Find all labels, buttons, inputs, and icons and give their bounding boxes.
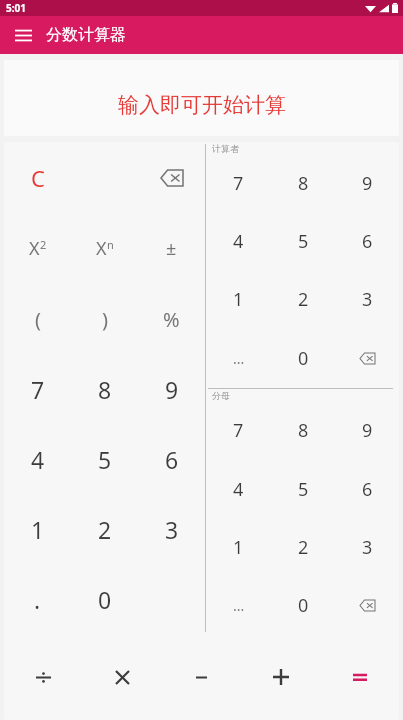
button[interactable]: 8 [271, 154, 335, 212]
button[interactable]: Equals [320, 634, 399, 720]
button[interactable]: 7 [206, 401, 271, 460]
staticText: 3 [362, 535, 373, 560]
staticText: 3 [362, 287, 373, 312]
staticText: ) [102, 306, 108, 333]
button[interactable]: 7 [4, 354, 71, 424]
staticText: 7 [233, 171, 244, 196]
button[interactable]: 2 [71, 494, 138, 564]
button[interactable]: Divide [4, 634, 83, 720]
button[interactable]: 5 [271, 460, 335, 518]
staticText: 1 [31, 514, 45, 545]
staticText: X [96, 236, 107, 261]
staticText: 9 [362, 171, 373, 196]
button[interactable]: 2 [271, 270, 335, 329]
button[interactable]: 6 [335, 460, 399, 518]
staticText: 6 [362, 477, 373, 502]
button[interactable]: 9 [138, 354, 205, 424]
button[interactable]: Backspace [138, 142, 205, 213]
button[interactable]: 9 [335, 401, 399, 460]
staticText: 8 [98, 374, 112, 405]
button[interactable]: 1 [206, 518, 271, 576]
button[interactable]: 0 [71, 564, 138, 634]
staticText: 2 [40, 237, 47, 252]
staticText: n [107, 237, 114, 252]
staticText: 5 [298, 229, 309, 254]
button[interactable]: 1 [206, 270, 271, 329]
button[interactable]: 3 [335, 518, 399, 576]
staticText: 9 [362, 418, 373, 443]
staticText: . [34, 584, 41, 615]
staticText: 2 [298, 535, 309, 560]
staticText: 7 [31, 374, 45, 405]
staticText: % [163, 306, 180, 333]
button[interactable]: 5 [71, 424, 138, 494]
button[interactable]: 3 [335, 270, 399, 329]
staticText: X [29, 236, 40, 261]
staticText: 1 [233, 287, 244, 312]
staticText: 3 [165, 514, 179, 545]
button[interactable]: 9 [335, 154, 399, 212]
button[interactable]: ± [138, 213, 205, 284]
button[interactable]: 6 [335, 212, 399, 270]
staticText: C [31, 163, 45, 193]
button[interactable]: ... [206, 329, 271, 388]
button[interactable]: 0 [271, 329, 335, 388]
button[interactable]: Menu [0, 16, 46, 54]
button[interactable]: 0 [271, 576, 335, 634]
staticText: 2 [298, 287, 309, 312]
staticText: 2 [98, 514, 112, 545]
button[interactable]: Backspace [335, 576, 399, 634]
staticText: 6 [165, 444, 179, 475]
staticText: 计算者 [212, 143, 239, 154]
button[interactable]: X [71, 213, 138, 284]
button[interactable]: Backspace [335, 329, 399, 388]
staticText: 0 [298, 593, 309, 618]
button[interactable]: 8 [271, 401, 335, 460]
button[interactable]: ( [4, 284, 71, 354]
button[interactable]: C [4, 142, 71, 213]
button[interactable]: % [138, 284, 205, 354]
staticText: ... [233, 596, 245, 615]
staticText: ( [35, 306, 41, 333]
button[interactable]: ) [71, 284, 138, 354]
staticText: 4 [31, 444, 45, 475]
button[interactable]: 6 [138, 424, 205, 494]
staticText: 7 [233, 418, 244, 443]
button[interactable]: Minus [162, 634, 241, 720]
staticText: 8 [298, 418, 309, 443]
staticText: 8 [298, 171, 309, 196]
button[interactable]: . [4, 564, 71, 634]
staticText: 6 [362, 229, 373, 254]
staticText: 输入即可开始计算 [118, 92, 286, 118]
button[interactable]: Multiply [83, 634, 162, 720]
button[interactable]: 8 [71, 354, 138, 424]
button[interactable]: 4 [206, 212, 271, 270]
button[interactable]: X [4, 213, 71, 284]
staticText: 0 [298, 346, 309, 371]
button[interactable]: 4 [4, 424, 71, 494]
staticText: ± [166, 236, 177, 261]
staticText: 分母 [212, 390, 230, 401]
staticText: 5:01 [6, 1, 26, 15]
button[interactable]: 3 [138, 494, 205, 564]
staticText: 0 [98, 584, 112, 615]
button[interactable]: 5 [271, 212, 335, 270]
staticText: 分数计算器 [46, 25, 126, 45]
button[interactable]: 4 [206, 460, 271, 518]
staticText: 4 [233, 229, 244, 254]
button[interactable]: Plus [241, 634, 320, 720]
button[interactable]: 7 [206, 154, 271, 212]
staticText: 4 [233, 477, 244, 502]
button[interactable]: 2 [271, 518, 335, 576]
staticText: ... [233, 349, 245, 368]
staticText: 9 [165, 374, 179, 405]
button[interactable]: ... [206, 576, 271, 634]
staticText: 5 [98, 444, 112, 475]
staticText: 5 [298, 477, 309, 502]
button[interactable]: 1 [4, 494, 71, 564]
staticText: 1 [233, 535, 244, 560]
